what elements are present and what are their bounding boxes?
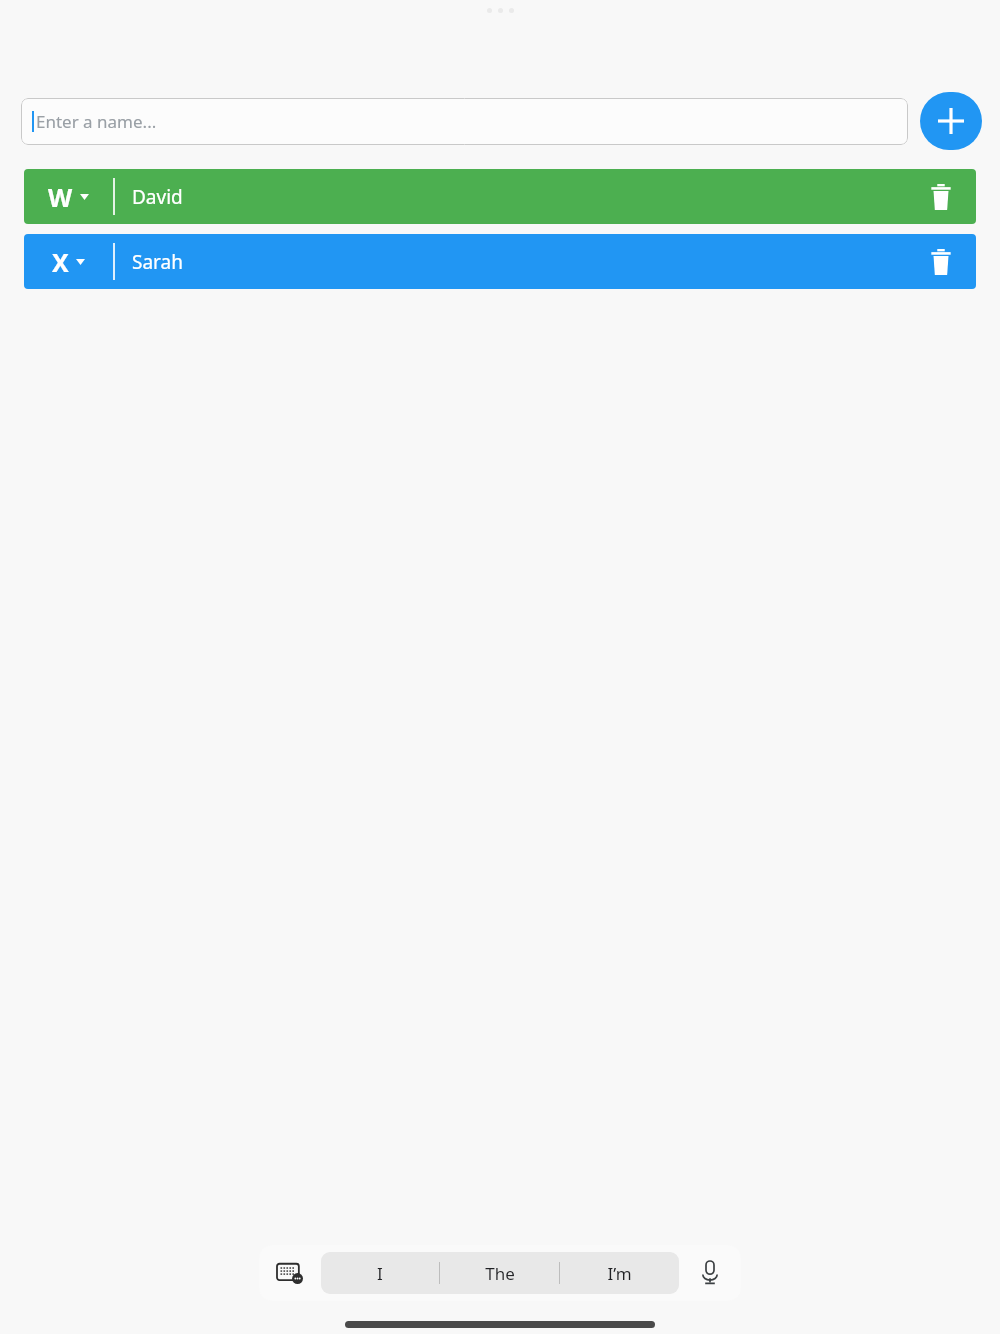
button[interactable]: Delete Sarah [906,234,976,289]
staticText: X [52,245,69,279]
button[interactable]: X [24,234,976,289]
button[interactable]: X [24,234,113,289]
staticText: Sarah [132,249,183,275]
staticText: David [132,184,183,210]
button[interactable]: Keyboard [259,1245,321,1301]
button[interactable]: W [24,169,113,224]
staticText: W [48,180,73,214]
button[interactable]: The [440,1252,559,1294]
staticText: I’m [607,1262,632,1285]
button[interactable]: Voice input [679,1245,741,1301]
button[interactable]: W [24,169,976,224]
staticText: The [485,1262,515,1285]
button[interactable]: Delete David [906,169,976,224]
staticText: I [377,1262,383,1285]
button[interactable]: I [321,1252,439,1294]
staticText: Enter a name... [36,110,157,133]
button[interactable]: Enter a name... [21,98,908,145]
button[interactable]: I’m [560,1252,679,1294]
button[interactable]: Add [920,92,982,150]
